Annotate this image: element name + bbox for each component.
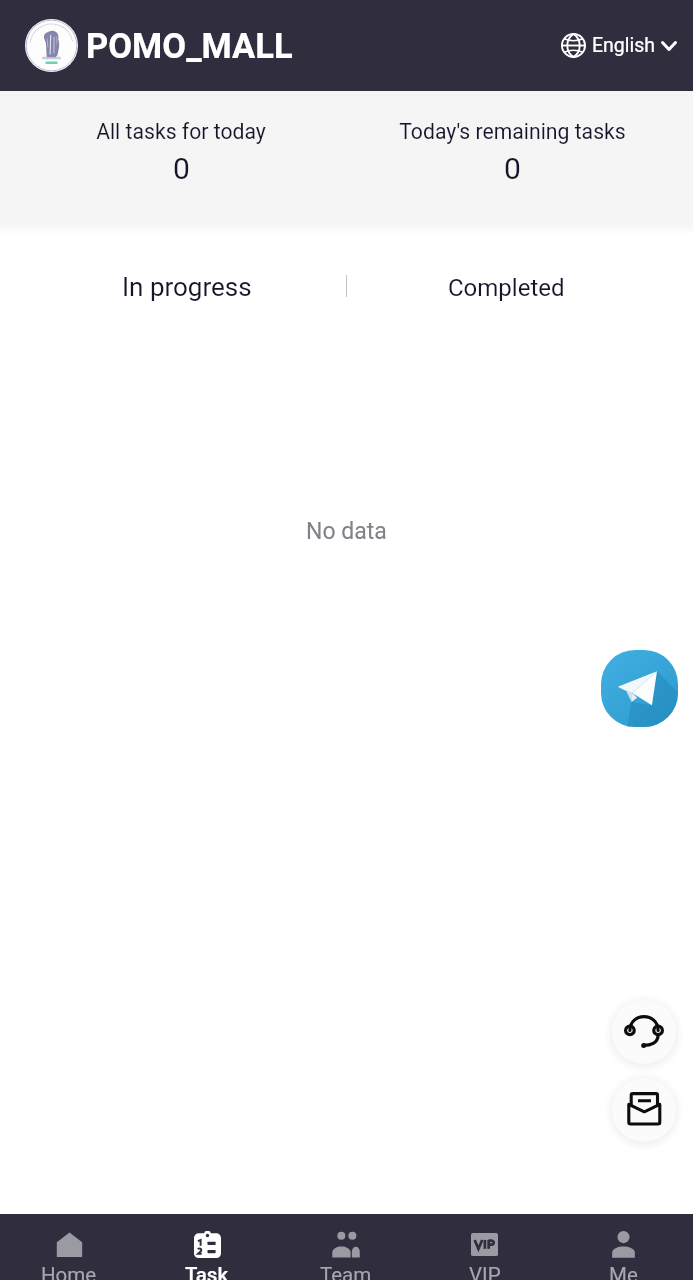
button[interactable]: Customer service	[612, 1000, 676, 1064]
button[interactable]: Completed	[346, 235, 693, 330]
button[interactable]: Select language	[553, 25, 685, 66]
staticText: 0	[173, 151, 190, 186]
staticText: No data	[306, 518, 387, 545]
staticText: English	[592, 34, 656, 57]
staticText: Team	[320, 1263, 372, 1280]
staticText: VIP	[469, 1263, 501, 1280]
button[interactable]: In progress	[0, 235, 347, 330]
button[interactable]: Telegram	[601, 650, 678, 727]
button[interactable]: Me	[554, 1214, 693, 1280]
button[interactable]: POMO_MALL logo	[25, 19, 78, 72]
button[interactable]: Task	[138, 1214, 276, 1280]
staticText: 0	[504, 151, 521, 186]
button[interactable]: Home	[0, 1214, 138, 1280]
staticText: POMO_MALL	[86, 26, 293, 66]
staticText: All tasks for today	[96, 119, 266, 144]
button[interactable]: Messages	[612, 1078, 676, 1142]
staticText: Task	[185, 1263, 229, 1280]
staticText: In progress	[122, 272, 252, 302]
staticText: Completed	[448, 274, 565, 302]
staticText: Home	[41, 1263, 97, 1280]
button[interactable]: VIP	[415, 1214, 554, 1280]
staticText: Me	[609, 1263, 638, 1280]
staticText: Today's remaining tasks	[399, 119, 626, 144]
button[interactable]: Team	[276, 1214, 415, 1280]
